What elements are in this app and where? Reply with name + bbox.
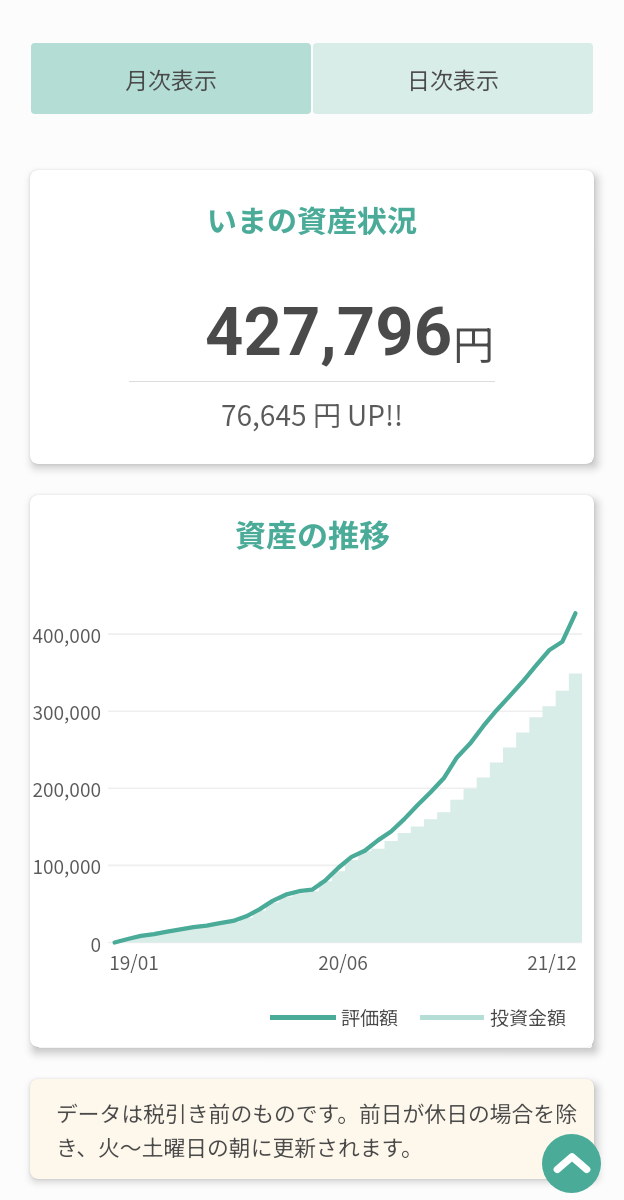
staticText: いまの資産状況 (207, 197, 417, 240)
staticText: 19/01 (94, 948, 174, 976)
staticText: 日次表示 (407, 62, 499, 95)
staticText: 0 (30, 930, 101, 958)
staticText: 20/06 (303, 948, 383, 976)
staticText: 円 (453, 312, 494, 371)
staticText: 427,796 (205, 293, 453, 372)
staticText: データは税引き前のものです。前日が休日の場合を除き、火〜土曜日の朝に更新されます… (56, 1097, 580, 1163)
staticText: 100,000 (30, 852, 101, 880)
staticText: 300,000 (30, 698, 101, 726)
staticText: 76,645 円 UP!! (221, 394, 404, 435)
staticText: 400,000 (30, 621, 101, 649)
staticText: 21/12 (512, 948, 592, 976)
staticText: 評価額 (341, 1003, 399, 1031)
staticText: 資産の推移 (235, 511, 390, 556)
staticText: 200,000 (30, 775, 101, 803)
staticText: 投資金額 (490, 1003, 567, 1031)
button[interactable]: 日次表示 (313, 43, 593, 114)
button[interactable]: 月次表示 (31, 43, 311, 114)
staticText: 月次表示 (125, 62, 217, 95)
button[interactable]: Scroll to top (542, 1134, 601, 1193)
